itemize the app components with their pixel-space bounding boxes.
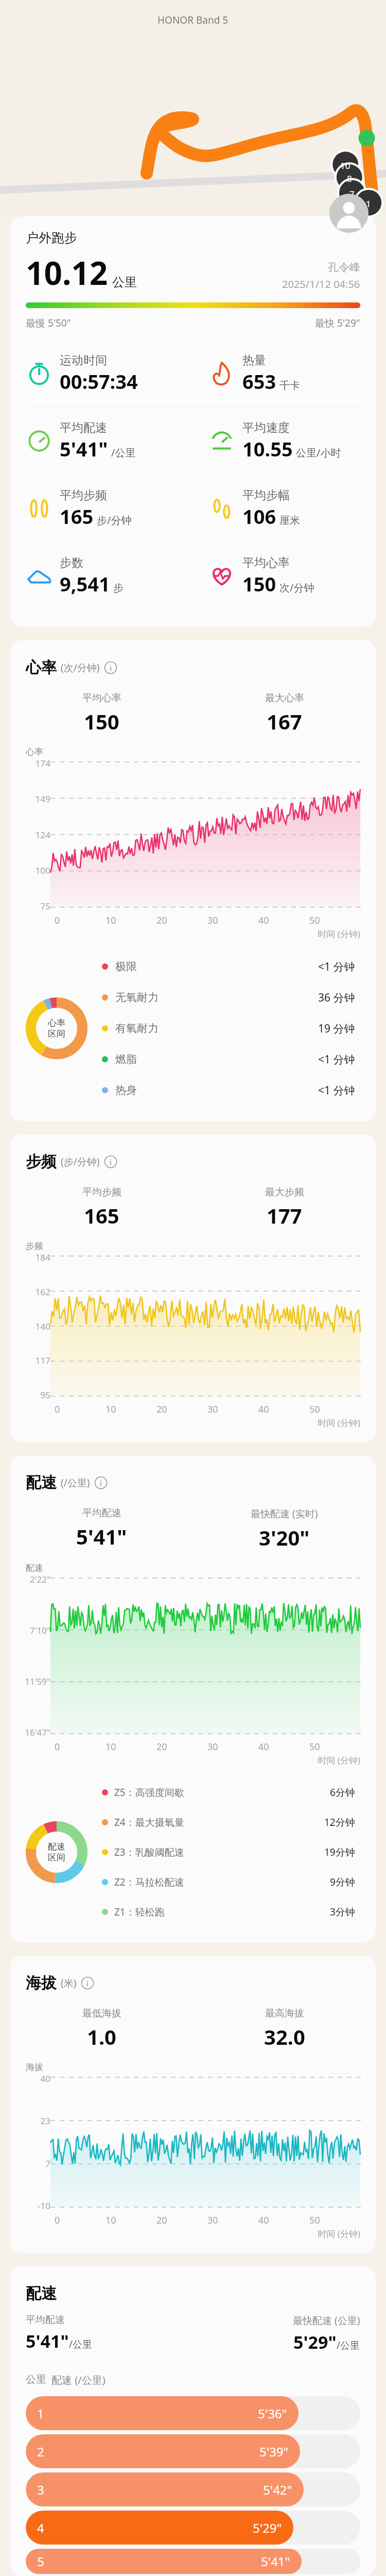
staticText: 184 (20, 1251, 50, 1263)
staticText: 平均心率 (82, 692, 121, 704)
staticText: Z4：最大摄氧量 (114, 1816, 324, 1829)
staticText: 3'20" (259, 1523, 310, 1551)
staticText: 最低海拔 (82, 2007, 121, 2020)
staticText: 热身 (115, 1083, 318, 1097)
staticText: 174 (20, 757, 50, 769)
button[interactable]: 4 (26, 2511, 360, 2545)
staticText: 653 (242, 368, 276, 395)
staticText: 步频 (26, 1152, 57, 1172)
button[interactable]: Info (104, 1155, 117, 1168)
staticText: 10.12 (26, 251, 108, 294)
staticText: 162 (20, 1286, 50, 1298)
staticText: 30 (207, 914, 258, 927)
button[interactable]: Info (104, 661, 117, 674)
staticText: 75 (20, 900, 50, 912)
staticText: 5 (37, 2553, 44, 2570)
staticText: 区间 (48, 1852, 65, 1863)
staticText: 19 分钟 (318, 1021, 355, 1036)
staticText: 7 (20, 2158, 50, 2170)
staticText: 10 (106, 1403, 156, 1416)
staticText: 0 (55, 914, 106, 927)
staticText: <1 分钟 (318, 1052, 355, 1067)
staticText: 厘米 (279, 514, 300, 527)
staticText: 4 (37, 2519, 44, 2536)
staticText: 50 (309, 914, 360, 927)
staticText: 50 (309, 2214, 360, 2227)
staticText: 3 (37, 2481, 44, 2498)
staticText: 8 (347, 173, 352, 184)
staticText: 50 (309, 1403, 360, 1416)
staticText: Z5：高强度间歇 (114, 1786, 330, 1799)
staticText: 3分钟 (330, 1905, 355, 1919)
staticText: 极限 (115, 960, 318, 973)
staticText: 95 (20, 1389, 50, 1401)
staticText: 海拔 (26, 1973, 57, 1993)
staticText: 最大心率 (265, 692, 304, 704)
staticText: 10 (106, 1740, 156, 1753)
staticText: 心率 (26, 658, 57, 677)
staticText: 150 (84, 707, 119, 735)
staticText: 5'39" (259, 2443, 289, 2460)
staticText: 5'41" (261, 2553, 290, 2570)
staticText: 12分钟 (324, 1816, 355, 1829)
staticText: 00:57:34 (60, 368, 138, 395)
staticText: 40 (258, 1403, 309, 1416)
staticText: 165 (60, 503, 94, 530)
staticText: 最大步频 (265, 1186, 304, 1198)
staticText: 40 (258, 2214, 309, 2227)
staticText: 10.55 (242, 435, 293, 462)
staticText: 106 (242, 503, 276, 530)
staticText: 40 (258, 914, 309, 927)
staticText: 0 (55, 1740, 106, 1753)
staticText: 区间 (48, 1028, 65, 1039)
staticText: i (86, 1978, 89, 1988)
staticText: 燃脂 (115, 1053, 318, 1066)
staticText: 海拔 (26, 2062, 43, 2073)
button[interactable]: 5 (26, 2549, 360, 2574)
staticText: 40 (258, 1740, 309, 1753)
staticText: 时间 (分钟) (10, 1754, 360, 1766)
staticText: 最慢 5'50" (26, 316, 315, 330)
staticText: 配速 (26, 1563, 43, 1573)
staticText: 无氧耐力 (115, 991, 318, 1004)
staticText: 2'22" (20, 1573, 50, 1585)
staticText: /公里 (111, 446, 136, 460)
button[interactable]: 2 (26, 2434, 360, 2468)
staticText: 32.0 (264, 2023, 305, 2050)
staticText: 配速 (26, 2284, 57, 2303)
staticText: 20 (156, 1740, 207, 1753)
staticText: 5'42" (263, 2481, 292, 2498)
staticText: 有氧耐力 (115, 1022, 318, 1035)
staticText: 最快配速 (公里) (293, 2314, 360, 2327)
staticText: 2025/1/12 04:56 (282, 277, 360, 291)
staticText: 平均步频 (60, 488, 107, 503)
staticText: 配速 (48, 1841, 65, 1852)
staticText: 公里 (26, 2373, 46, 2386)
staticText: 9分钟 (330, 1875, 355, 1889)
staticText: 平均步幅 (242, 488, 290, 503)
staticText: 10 (340, 160, 350, 172)
staticText: 5'41" (76, 1522, 127, 1550)
staticText: 平均配速 (60, 420, 107, 435)
button[interactable]: Info (94, 1476, 108, 1489)
button[interactable]: 1 (26, 2396, 360, 2430)
staticText: (/公里) (61, 1476, 90, 1489)
staticText: 2 (37, 2443, 44, 2460)
button[interactable]: 3 (26, 2472, 360, 2506)
staticText: 步 (113, 582, 124, 595)
button[interactable]: Info (81, 1976, 94, 1990)
staticText: 11'59" (20, 1675, 50, 1687)
staticText: 5'29" (293, 2330, 337, 2354)
staticText: 平均心率 (242, 555, 290, 570)
staticText: 0 (55, 1403, 106, 1416)
staticText: 孔令峰 (328, 261, 360, 274)
staticText: 124 (20, 829, 50, 841)
staticText: 167 (267, 707, 302, 735)
staticText: 配速 (/公里) (51, 2373, 106, 2387)
staticText: Z3：乳酸阈配速 (114, 1845, 324, 1859)
staticText: Z2：马拉松配速 (114, 1875, 330, 1889)
staticText: Z1：轻松跑 (114, 1905, 330, 1919)
staticText: 5'29" (253, 2519, 282, 2536)
staticText: (次/分钟) (61, 661, 100, 674)
button[interactable]: Profile (329, 194, 369, 233)
